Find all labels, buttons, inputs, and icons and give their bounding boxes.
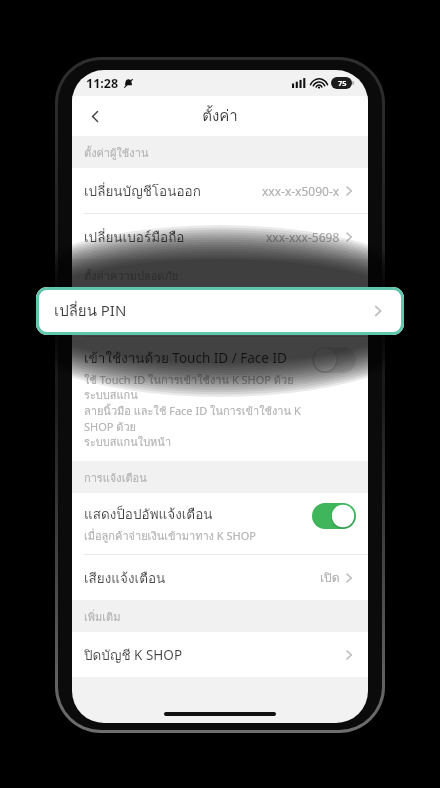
staticText: 75 xyxy=(338,78,347,88)
staticText: เปลี่ยน PIN xyxy=(54,299,127,323)
staticText: ตั้งค่าความปลอดภัย xyxy=(84,267,179,284)
button[interactable]: Toggle off xyxy=(312,347,356,373)
button[interactable]: ปิดบัญชี K SHOP xyxy=(72,632,368,677)
staticText: เปลี่ยนบัญชีโอนออก xyxy=(84,180,201,201)
staticText: แสดงป็อปอัพแจ้งเตือน xyxy=(84,503,213,524)
staticText: xxx-xxx-5698 xyxy=(266,229,340,245)
staticText: ตั้งค่า xyxy=(202,104,238,128)
staticText: การแจ้งเตือน xyxy=(84,469,147,486)
button[interactable]: เปลี่ยนเบอร์มือถือ xyxy=(72,214,368,259)
staticText: เปลี่ยนเบอร์มือถือ xyxy=(84,226,185,247)
button[interactable]: เปลี่ยนบัญชีโอนออก xyxy=(72,168,368,214)
staticText: เข้าใช้งานด้วย Touch ID / Face ID xyxy=(84,347,287,368)
staticText: ใช้ Touch ID ในการเข้าใช้งาน K SHOP ด้วย… xyxy=(84,371,304,451)
staticText: xxx-x-x5090-x xyxy=(262,183,340,199)
button[interactable]: Back xyxy=(78,99,112,133)
staticText: เมื่อลูกค้าจ่ายเงินเข้ามาทาง K SHOP xyxy=(84,527,256,544)
staticText: ปิดบัญชี K SHOP xyxy=(84,644,183,665)
staticText: ตั้งค่าผู้ใช้งาน xyxy=(84,144,149,161)
staticText: เปิด xyxy=(320,568,340,587)
staticText: เสียงแจ้งเตือน xyxy=(84,567,166,588)
staticText: 11:28 xyxy=(86,75,119,92)
button[interactable]: เปลี่ยน PIN xyxy=(36,287,404,335)
staticText: เพิ่มเติม xyxy=(84,608,121,625)
button[interactable]: Toggle on xyxy=(312,503,356,529)
button[interactable]: เสียงแจ้งเตือน xyxy=(72,555,368,600)
